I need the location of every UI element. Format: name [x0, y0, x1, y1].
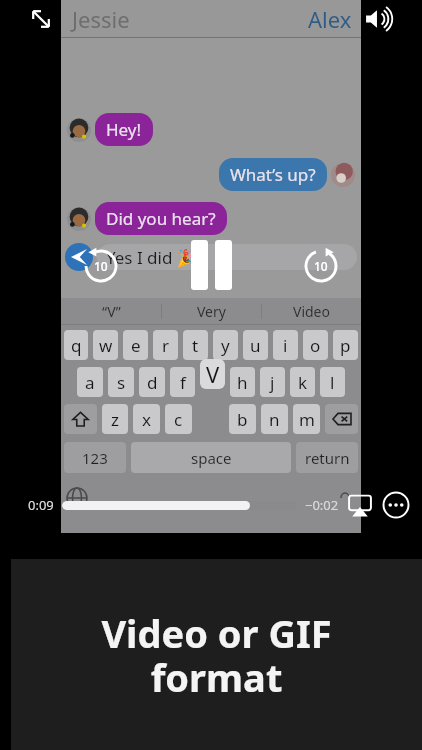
staticText: Very: [197, 302, 226, 321]
staticText: q: [71, 334, 82, 357]
staticText: Jessie: [72, 4, 130, 34]
button[interactable]: Did you hear?: [95, 202, 227, 235]
button[interactable]: Delete: [325, 404, 358, 434]
button[interactable]: Skip forward 10 seconds: [304, 249, 338, 283]
staticText: y: [221, 334, 230, 357]
button[interactable]: k: [290, 367, 315, 397]
staticText: t: [192, 334, 199, 357]
staticText: Hey!: [106, 118, 142, 141]
button[interactable]: Volume: [362, 2, 396, 36]
button[interactable]: What’s up?: [219, 158, 327, 191]
staticText: −0:02: [305, 496, 339, 514]
button[interactable]: l: [320, 367, 345, 397]
button[interactable]: Very: [162, 298, 261, 324]
button[interactable]: Alex: [308, 4, 352, 34]
button[interactable]: V: [200, 359, 225, 389]
button[interactable]: Yes I did 🎉: [97, 244, 357, 270]
staticText: V: [206, 359, 220, 389]
button[interactable]: 123: [64, 442, 126, 473]
staticText: m: [299, 408, 315, 431]
staticText: 10: [314, 258, 328, 274]
staticText: i: [283, 334, 288, 357]
staticText: Yes I did 🎉: [106, 246, 198, 269]
staticText: x: [142, 408, 151, 431]
staticText: u: [250, 334, 261, 357]
button[interactable]: Skip back 10 seconds: [84, 249, 118, 283]
staticText: What’s up?: [230, 163, 316, 186]
staticText: b: [237, 408, 248, 431]
button[interactable]: u: [243, 330, 268, 360]
button[interactable]: b: [229, 404, 256, 434]
button[interactable]: Shift: [64, 404, 97, 434]
button[interactable]: n: [261, 404, 288, 434]
staticText: return: [305, 448, 350, 468]
staticText: Did you hear?: [106, 207, 216, 230]
button[interactable]: p: [333, 330, 358, 360]
staticText: e: [131, 334, 141, 357]
staticText: l: [330, 371, 335, 394]
button[interactable]: h: [230, 367, 255, 397]
button[interactable]: y: [213, 330, 238, 360]
button[interactable]: d: [139, 367, 165, 397]
button[interactable]: Video: [262, 298, 361, 324]
staticText: o: [310, 334, 321, 357]
staticText: s: [117, 371, 126, 394]
staticText: w: [99, 334, 113, 357]
staticText: z: [111, 408, 119, 431]
staticText: “V”: [102, 302, 121, 321]
button[interactable]: Pause: [191, 240, 232, 290]
staticText: h: [237, 371, 248, 394]
staticText: Video: [293, 302, 330, 321]
staticText: 0:09: [28, 496, 54, 514]
staticText: k: [298, 371, 308, 394]
button[interactable]: r: [153, 330, 178, 360]
staticText: space: [191, 448, 232, 468]
button[interactable]: Video or GIF format: [11, 559, 422, 750]
staticText: f: [180, 371, 186, 394]
button[interactable]: return: [296, 442, 358, 473]
button[interactable]: j: [260, 367, 285, 397]
button[interactable]: o: [303, 330, 328, 360]
staticText: Video or GIF format: [101, 607, 332, 703]
button[interactable]: c: [165, 404, 192, 434]
button[interactable]: f: [170, 367, 195, 397]
staticText: j: [270, 371, 275, 394]
staticText: c: [174, 408, 183, 431]
staticText: n: [269, 408, 280, 431]
button[interactable]: x: [133, 404, 160, 434]
button[interactable]: m: [293, 404, 320, 434]
staticText: p: [340, 334, 351, 357]
button[interactable]: [62, 501, 297, 510]
button[interactable]: t: [183, 330, 208, 360]
staticText: r: [162, 334, 170, 357]
button[interactable]: w: [93, 330, 118, 360]
button[interactable]: More options: [382, 491, 410, 519]
button[interactable]: space: [131, 442, 291, 473]
button[interactable]: s: [108, 367, 134, 397]
button[interactable]: q: [64, 330, 88, 360]
staticText: d: [147, 371, 158, 394]
button[interactable]: Apps: [65, 243, 93, 271]
button[interactable]: AirPlay: [347, 492, 373, 518]
button[interactable]: Expand: [26, 4, 56, 34]
staticText: 10: [94, 258, 108, 274]
button[interactable]: “V”: [61, 298, 161, 324]
button[interactable]: z: [102, 404, 128, 434]
staticText: a: [85, 371, 95, 394]
button[interactable]: a: [77, 367, 103, 397]
button[interactable]: e: [123, 330, 148, 360]
button[interactable]: i: [273, 330, 298, 360]
button[interactable]: Hey!: [95, 113, 153, 146]
staticText: 123: [82, 448, 108, 468]
